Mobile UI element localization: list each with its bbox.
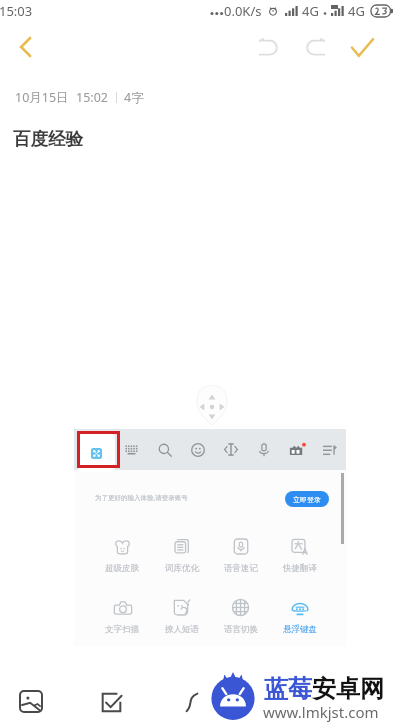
staticText: 撩人短语	[165, 624, 199, 635]
staticText: 语言切换	[224, 624, 258, 635]
staticText: 15:03	[0, 2, 33, 20]
staticText: 为了更好的输入体验,请登录账号	[95, 493, 188, 502]
button[interactable]: Search	[148, 429, 181, 470]
button[interactable]: 文字扫描	[92, 598, 152, 643]
button[interactable]: 语音速记	[211, 537, 270, 582]
button[interactable]: Move keyboard	[195, 385, 229, 425]
button[interactable]: 悬浮键盘	[270, 598, 329, 643]
staticText: 语音速记	[224, 563, 258, 574]
staticText: www.lmkjst.com	[263, 702, 379, 722]
staticText: 4G	[302, 2, 319, 20]
button[interactable]: 超级皮肤	[92, 537, 152, 582]
button[interactable]: 撩人短语	[152, 598, 211, 643]
staticText: 安卓网	[312, 674, 384, 704]
button[interactable]: Checklist	[91, 682, 131, 722]
button[interactable]: Camera	[280, 429, 313, 470]
button[interactable]: Redo	[294, 26, 336, 68]
staticText: 蓝莓	[264, 674, 312, 704]
button[interactable]: More	[313, 429, 346, 470]
staticText: 词库优化	[165, 563, 199, 574]
staticText: 4字	[124, 89, 144, 106]
button[interactable]: Draw	[171, 682, 211, 722]
staticText: 快捷翻译	[283, 563, 317, 574]
button[interactable]: 语言切换	[211, 598, 270, 643]
button[interactable]: 立即登录	[285, 491, 329, 507]
staticText: 0.0K/s	[224, 2, 262, 20]
staticText: 4G	[348, 2, 365, 20]
staticText: 15:02	[76, 89, 108, 106]
button[interactable]: Emoji	[181, 429, 214, 470]
staticText: 超级皮肤	[105, 563, 139, 574]
button[interactable]: Undo	[247, 26, 289, 68]
staticText: 文字扫描	[105, 624, 139, 635]
button[interactable]: Back	[4, 26, 46, 68]
staticText: 10月15日	[15, 89, 69, 106]
staticText: 百度经验	[13, 128, 83, 150]
staticText: 悬浮键盘	[283, 624, 317, 635]
button[interactable]: 快捷翻译	[270, 537, 329, 582]
staticText: 立即登录	[293, 495, 321, 504]
button[interactable]: Microphone	[247, 429, 280, 470]
button[interactable]: 词库优化	[152, 537, 211, 582]
button[interactable]: Insert image	[11, 681, 51, 721]
button[interactable]: Keyboard	[114, 429, 148, 470]
button[interactable]: Panel	[78, 434, 115, 472]
button[interactable]: Done	[341, 26, 383, 68]
button[interactable]: Voice changer	[214, 429, 247, 470]
